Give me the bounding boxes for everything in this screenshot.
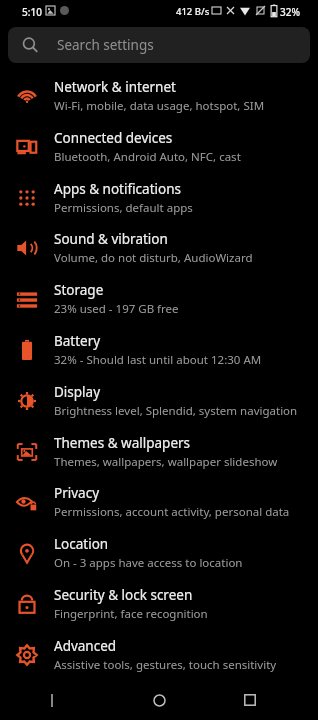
button[interactable]: Home (139, 680, 179, 720)
staticText: Privacy (54, 484, 100, 502)
staticText: Advanced (54, 637, 117, 655)
staticText: Network & internet (54, 78, 176, 96)
staticText: Connected devices (54, 129, 173, 147)
button[interactable]: Advanced (0, 630, 318, 680)
button[interactable]: Connected devices (0, 122, 318, 172)
staticText: 32% (280, 5, 300, 19)
staticText: Bluetooth, Android Auto, NFC, cast (54, 149, 241, 165)
staticText: Wi-Fi, mobile, data usage, hotspot, SIM (54, 98, 265, 114)
button[interactable]: Network & internet (0, 71, 318, 121)
staticText: Permissions, account activity, personal … (54, 504, 290, 520)
staticText: 32% - Should last until about 12:30 AM (54, 352, 262, 368)
staticText: Themes, wallpapers, wallpaper slideshow (54, 454, 278, 470)
staticText: Fingerprint, face recognition (54, 606, 208, 622)
button[interactable]: Themes & wallpapers (0, 427, 318, 477)
button[interactable]: Sound & vibration (0, 223, 318, 273)
staticText: Location (54, 535, 109, 553)
staticText: Sound & vibration (54, 230, 168, 248)
staticText: Volume, do not disturb, AudioWizard (54, 250, 253, 266)
staticText: 23% used - 197 GB free (54, 301, 179, 317)
staticText: Search settings (57, 36, 154, 54)
staticText: On - 3 apps have access to location (54, 555, 243, 571)
button[interactable]: Display (0, 376, 318, 426)
staticText: 412 B/s (176, 5, 210, 18)
staticText: 5:10 (22, 5, 42, 19)
staticText: Themes & wallpapers (54, 434, 191, 452)
staticText: Assistive tools, gestures, touch sensiti… (54, 657, 277, 673)
staticText: Storage (54, 281, 104, 299)
staticText: Battery (54, 332, 101, 350)
staticText: Apps & notifications (54, 180, 181, 198)
staticText: Brightness level, Splendid, system navig… (54, 403, 298, 419)
button[interactable]: Location (0, 528, 318, 578)
staticText: Display (54, 383, 101, 401)
button[interactable]: Apps & notifications (0, 173, 318, 223)
staticText: Permissions, default apps (54, 200, 193, 216)
button[interactable]: Recent apps (230, 680, 270, 720)
staticText: Security & lock screen (54, 586, 193, 604)
button[interactable]: Battery (0, 325, 318, 375)
button[interactable]: Security & lock screen (0, 579, 318, 629)
button[interactable]: Storage (0, 274, 318, 324)
button[interactable]: Privacy (0, 477, 318, 527)
button[interactable]: Search settings (8, 27, 310, 63)
